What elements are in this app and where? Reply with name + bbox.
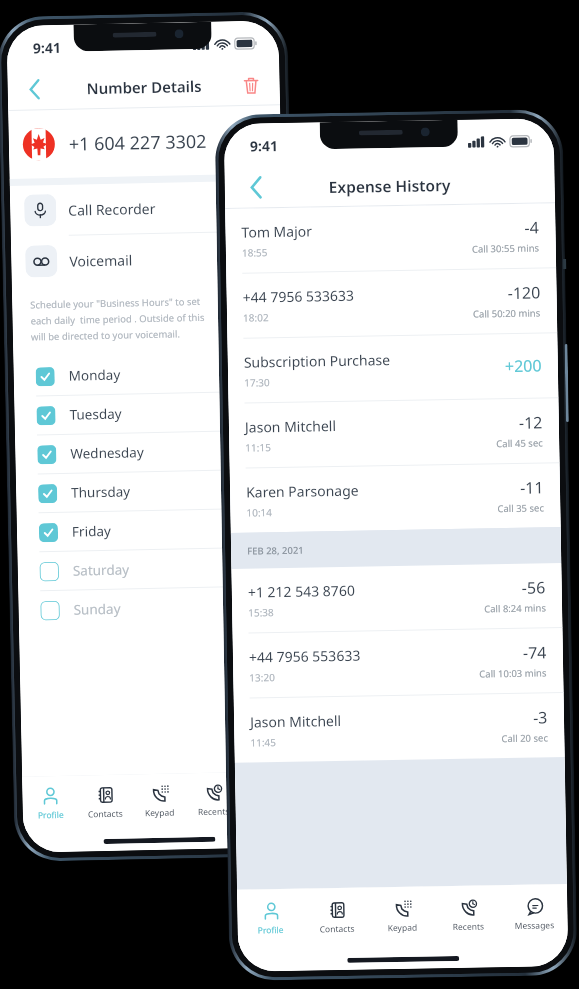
button[interactable]: Jason Mitchell	[228, 398, 560, 468]
button[interactable]: Delete	[235, 69, 266, 100]
staticText: Call 35 sec	[497, 501, 544, 515]
staticText: FEB 28, 2021	[247, 544, 304, 558]
staticText: Call Recorder	[68, 199, 156, 220]
button[interactable]: Call Recorder	[10, 180, 283, 236]
button[interactable]: Keypad	[369, 886, 436, 945]
button[interactable]: Keypad	[132, 773, 187, 828]
staticText: Schedule your "Business Hours" to set	[30, 295, 201, 311]
staticText: 15:38	[248, 605, 274, 620]
staticText: -12	[519, 411, 543, 434]
staticText: Expense History	[329, 174, 451, 197]
staticText: Keypad	[145, 807, 175, 819]
staticText: Number Details	[86, 76, 202, 98]
staticText: -4	[524, 216, 540, 239]
button[interactable]: Karen Parsonage	[230, 463, 561, 533]
button[interactable]: Profile	[237, 889, 304, 948]
staticText: Tuesday	[69, 405, 123, 424]
staticText: Keypad	[388, 922, 418, 934]
staticText: 11:45	[250, 735, 276, 750]
staticText: Call 20 sec	[501, 731, 548, 745]
button[interactable]: Tom Major	[225, 203, 556, 273]
button[interactable]: +1 212 543 8760	[231, 563, 562, 633]
button[interactable]: Back	[19, 74, 50, 105]
staticText: Tom Major	[241, 221, 313, 242]
staticText: Voicemail	[69, 250, 132, 271]
staticText: Recents	[453, 920, 485, 933]
staticText: -3	[533, 706, 548, 729]
staticText: Wednesday	[70, 443, 145, 463]
staticText: -74	[523, 641, 547, 664]
button[interactable]: Sunday	[18, 586, 291, 630]
button[interactable]: Voicemail	[11, 231, 284, 287]
button[interactable]: Friday	[17, 508, 289, 552]
staticText: Saturday	[73, 560, 130, 580]
staticText: Profile	[38, 809, 64, 821]
button[interactable]: Monday	[13, 352, 286, 396]
button[interactable]: Wednesday	[15, 430, 288, 474]
staticText: 11:15	[245, 440, 271, 455]
staticText: +44 7956 553633	[249, 646, 361, 667]
staticText: Friday	[72, 522, 111, 541]
button[interactable]: Back	[224, 162, 555, 208]
staticText: Jason Mitchell	[245, 416, 336, 437]
button[interactable]: Contacts	[77, 774, 133, 830]
staticText: Call 8:24 mins	[484, 601, 546, 615]
staticText: 13:20	[249, 670, 275, 685]
staticText: Thursday	[71, 482, 130, 502]
staticText: -56	[522, 576, 546, 599]
staticText: will be directed to your voicemail.	[31, 327, 181, 343]
button[interactable]: Saturday	[17, 547, 290, 591]
staticText: +1 604 227 3302	[69, 129, 207, 157]
staticText: Contacts	[88, 808, 123, 820]
staticText: Subscription Purchase	[244, 350, 391, 372]
staticText: Contacts	[320, 923, 355, 935]
staticText: -11	[520, 476, 544, 499]
button[interactable]: Jason Mitchell	[234, 693, 565, 763]
button[interactable]: +1 604 227 3302	[8, 105, 282, 179]
staticText: Monday	[68, 366, 121, 385]
staticText: -120	[507, 281, 541, 304]
button[interactable]: Recents	[435, 885, 502, 944]
staticText: each daily time period . Outside of this	[30, 311, 205, 327]
button[interactable]: Tuesday	[14, 391, 287, 435]
staticText: 18:02	[243, 310, 269, 325]
staticText: 10:14	[246, 505, 272, 520]
button[interactable]: +44 7956 553633	[232, 628, 564, 698]
staticText: Call 45 sec	[496, 436, 543, 450]
staticText: Messages	[515, 919, 555, 932]
staticText: 18:55	[242, 245, 268, 260]
staticText: Sunday	[73, 600, 121, 619]
staticText: Call 10:03 mins	[479, 666, 547, 681]
staticText: 9:41	[250, 136, 278, 155]
button[interactable]: +44 7956 533633	[226, 268, 557, 338]
button[interactable]: Recents	[186, 772, 241, 827]
button[interactable]: Subscription Purchase	[227, 333, 558, 403]
staticText: Call 30:55 mins	[472, 241, 540, 256]
staticText: +1 212 543 8760	[248, 581, 356, 602]
button[interactable]: Back	[238, 170, 273, 205]
button[interactable]: Contacts	[303, 887, 370, 947]
button[interactable]: Messages	[501, 884, 568, 943]
staticText: Call 50:20 mins	[473, 306, 541, 321]
staticText: Karen Parsonage	[246, 481, 359, 502]
staticText: Recents	[198, 805, 230, 818]
staticText: Jason Mitchell	[250, 711, 341, 732]
staticText: 9:41	[33, 38, 61, 57]
button[interactable]: Profile	[22, 776, 78, 831]
staticText: +44 7956 533633	[242, 286, 355, 307]
staticText: 17:30	[244, 375, 270, 390]
button[interactable]: Thursday	[16, 469, 288, 513]
staticText: Profile	[258, 924, 284, 936]
staticText: +200	[505, 354, 542, 377]
